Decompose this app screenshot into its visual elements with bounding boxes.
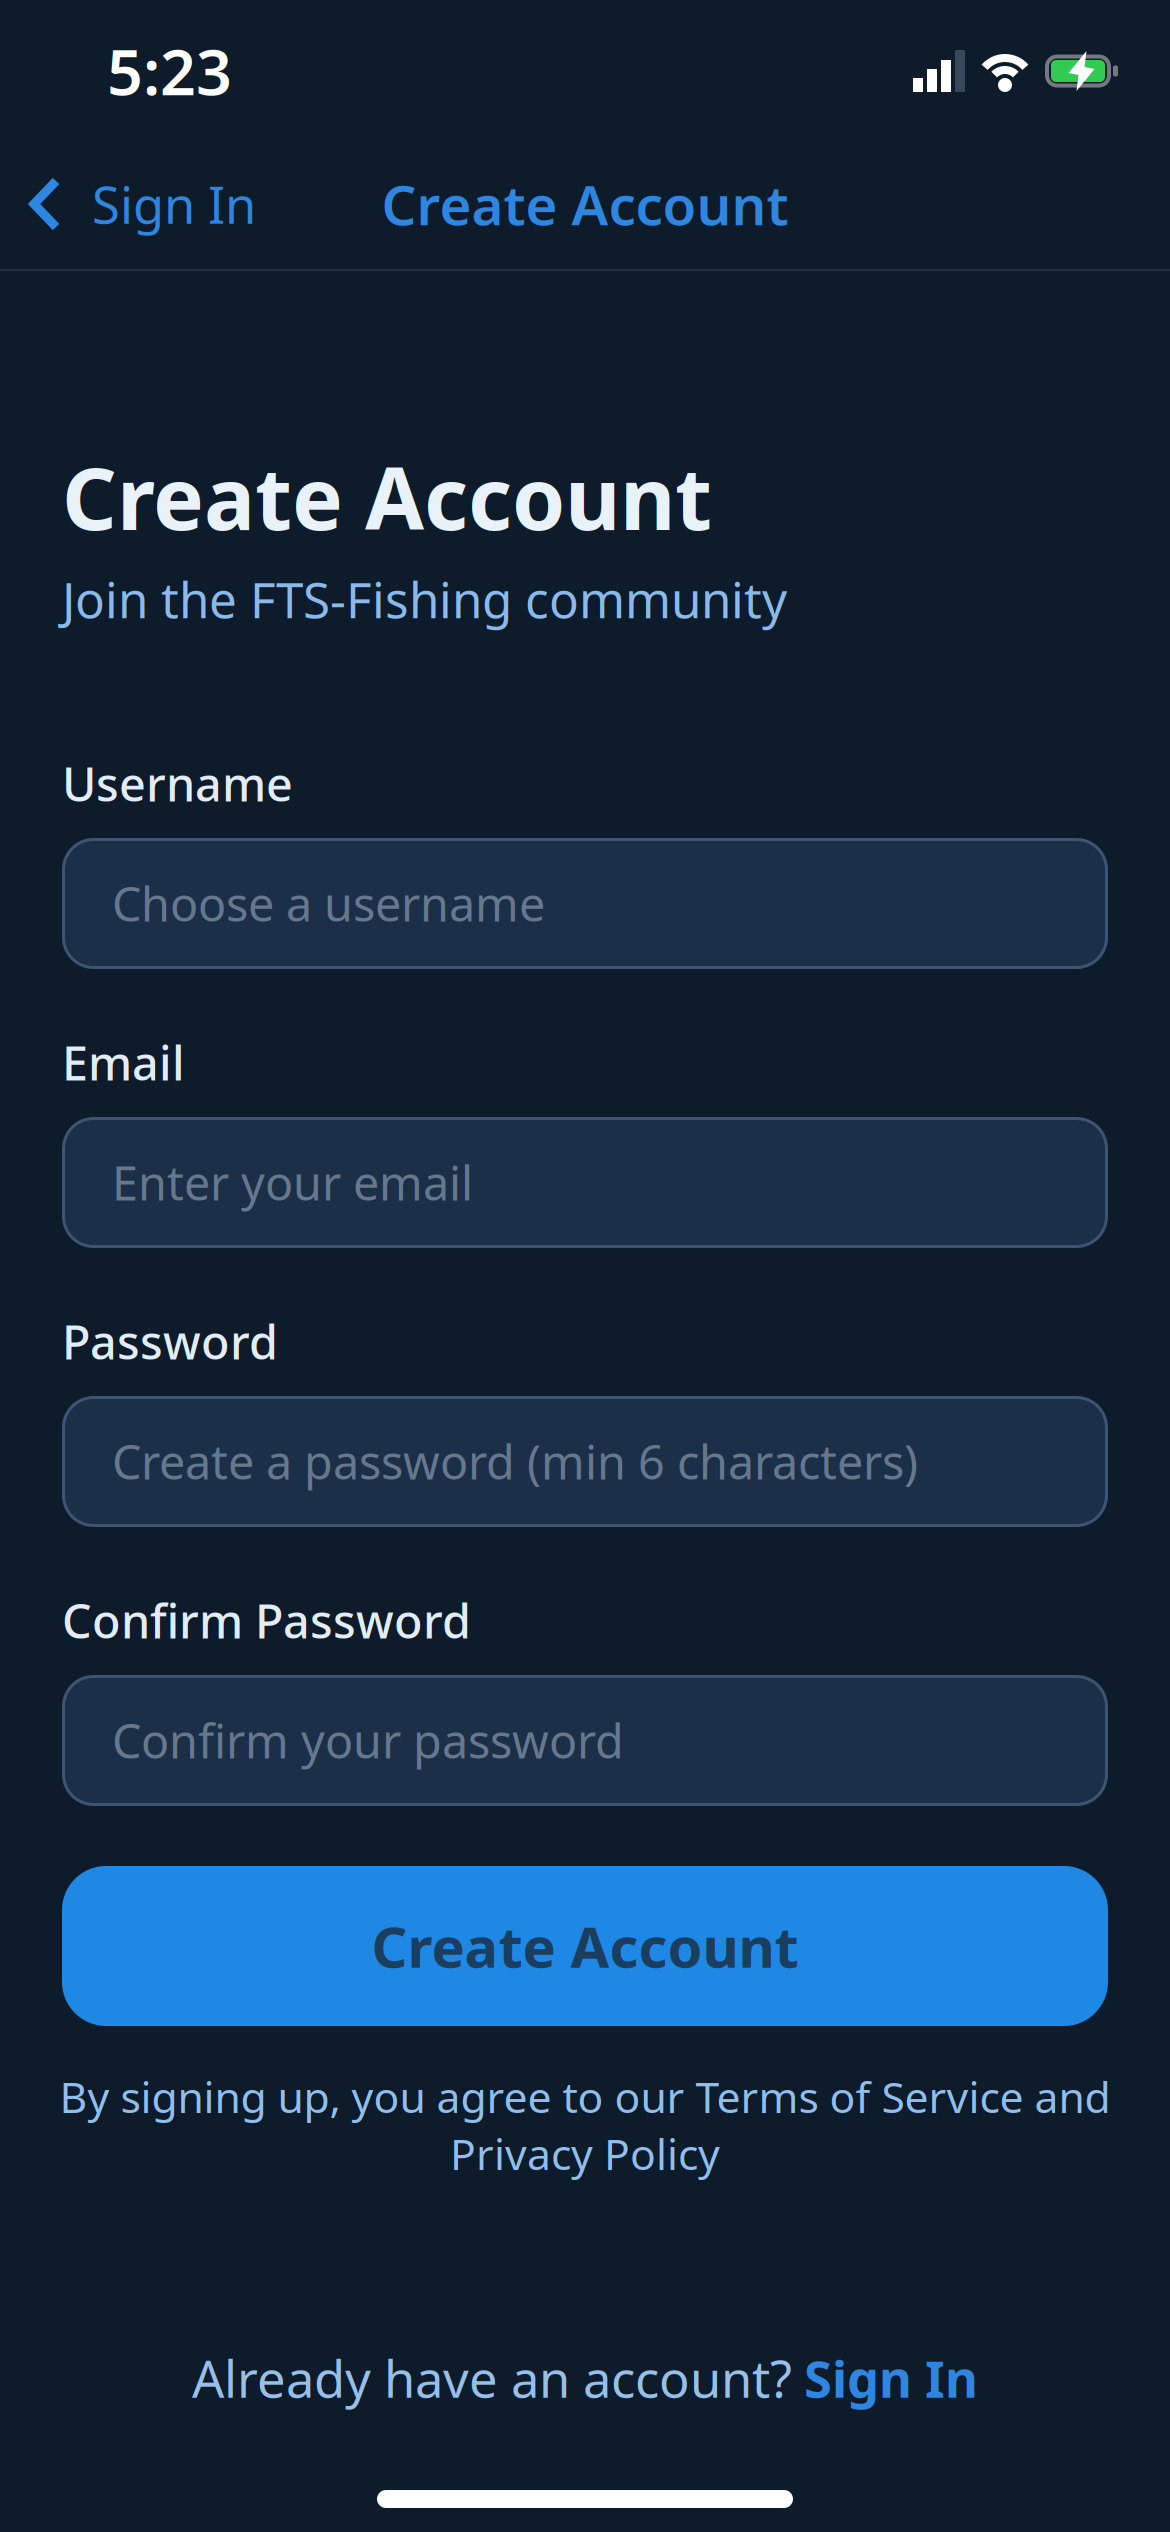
staticText: Create a password (min 6 characters) bbox=[112, 1430, 918, 1492]
staticText: By signing up, you agree to our Terms of… bbox=[59, 2068, 1110, 2125]
staticText: Confirm Password bbox=[62, 1589, 471, 1651]
staticText: Create Account bbox=[381, 168, 788, 240]
button[interactable]: Confirm your password bbox=[62, 1675, 1108, 1806]
button[interactable]: Create Account bbox=[62, 1866, 1108, 2026]
button[interactable]: Enter your email bbox=[62, 1117, 1108, 1248]
staticText: Sign In bbox=[804, 2344, 978, 2412]
staticText: Password bbox=[62, 1310, 278, 1372]
button[interactable]: Already have an account? bbox=[192, 2350, 978, 2406]
staticText: Confirm your password bbox=[112, 1709, 624, 1771]
staticText: Enter your email bbox=[112, 1151, 473, 1213]
staticText: Choose a username bbox=[112, 872, 545, 934]
button[interactable]: Create a password (min 6 characters) bbox=[62, 1396, 1108, 1527]
staticText: Username bbox=[62, 752, 293, 814]
button[interactable]: Sign In bbox=[0, 170, 256, 238]
staticText: Privacy Policy bbox=[450, 2125, 720, 2182]
staticText: Create Account bbox=[62, 440, 712, 554]
button[interactable]: Choose a username bbox=[62, 838, 1108, 969]
staticText: Already have an account? bbox=[192, 2344, 792, 2412]
staticText: Join the FTS-Fishing community bbox=[62, 566, 787, 632]
staticText: 5:23 bbox=[107, 29, 232, 113]
staticText: Sign In bbox=[92, 170, 256, 238]
staticText: Email bbox=[62, 1031, 185, 1093]
staticText: Create Account bbox=[371, 1909, 798, 1983]
